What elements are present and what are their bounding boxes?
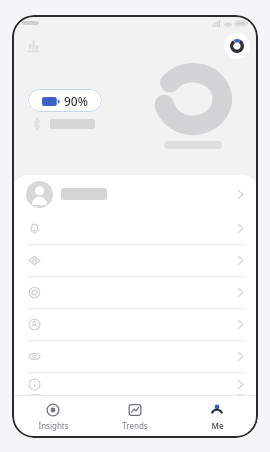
button[interactable]: Account: [12, 309, 258, 340]
button[interactable]: Battery 90 percent: [28, 89, 102, 112]
button[interactable]: Trends: [94, 396, 176, 438]
staticText: Insights: [38, 420, 69, 431]
button[interactable]: Me: [176, 396, 258, 438]
button[interactable]: About: [12, 373, 258, 395]
staticText: Trends: [122, 420, 148, 431]
button[interactable]: Notifications: [12, 213, 258, 244]
button[interactable]: Sync device: [224, 33, 250, 59]
staticText: Me: [211, 420, 224, 431]
button[interactable]: Display: [12, 341, 258, 372]
staticText: 90%: [64, 93, 88, 109]
button[interactable]: Statistics: [20, 33, 46, 59]
button[interactable]: Goals: [12, 245, 258, 276]
button[interactable]: Device: [12, 277, 258, 308]
button[interactable]: [12, 175, 258, 213]
button[interactable]: Insights: [12, 396, 94, 438]
